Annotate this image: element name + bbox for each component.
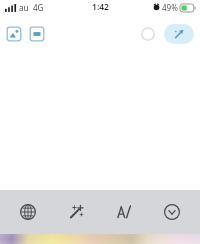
button[interactable]: Document [29,26,45,42]
button[interactable]: Photos [6,26,22,42]
button[interactable]: Auto enhance [56,194,96,230]
staticText: 49% [162,2,178,13]
button[interactable]: More [152,194,192,230]
button[interactable]: Enhance [164,24,194,44]
staticText: 4G [33,2,44,13]
staticText: au [19,2,29,13]
button[interactable]: Translate [8,194,48,230]
staticText: 1:42 [92,1,109,13]
button[interactable]: Select [141,27,155,41]
button[interactable]: Text tools [104,194,144,230]
